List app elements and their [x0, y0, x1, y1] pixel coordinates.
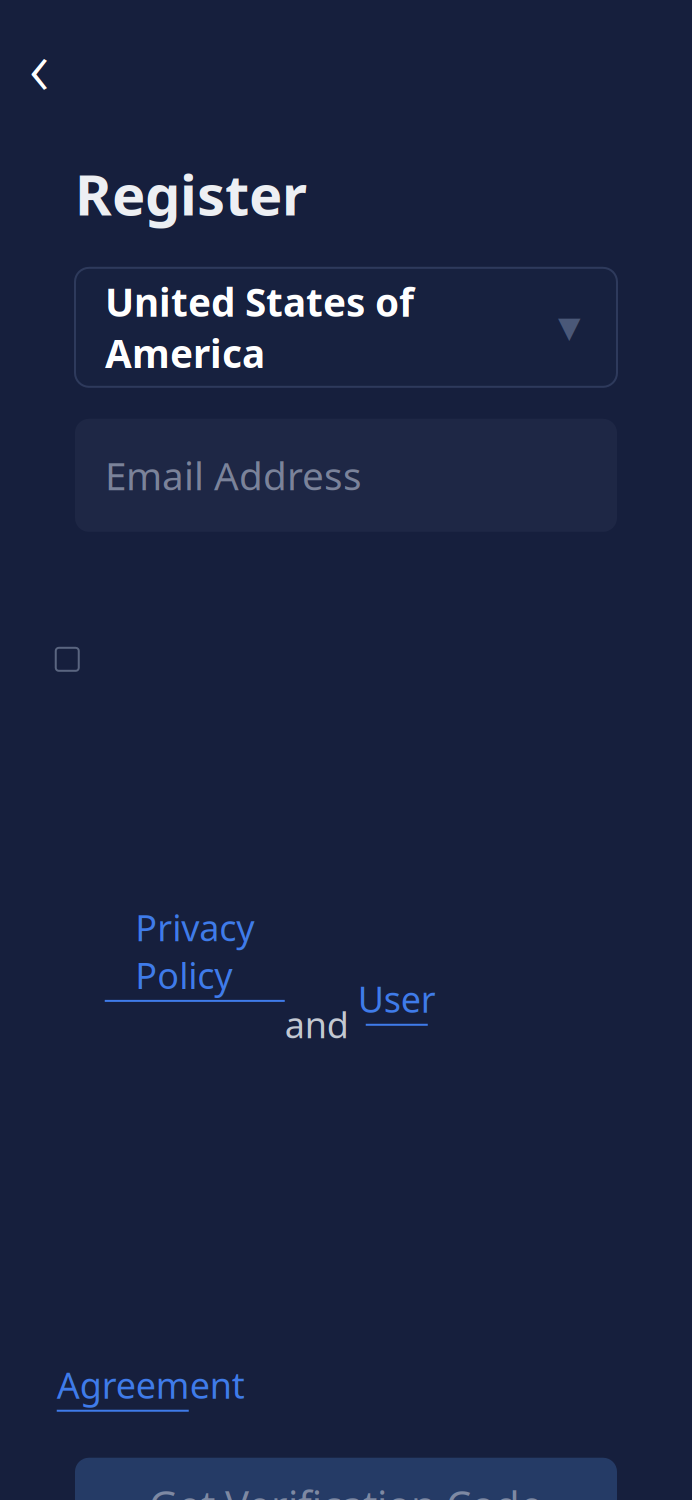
staticText: United States of America [105, 276, 414, 379]
staticText: ▼ [558, 311, 581, 344]
button[interactable]: Email Address [75, 419, 617, 532]
button[interactable]: I agree to the [86, 642, 606, 1412]
staticText: User [358, 975, 436, 1023]
button[interactable]: United States of America [75, 268, 617, 387]
button[interactable]: Back [8, 34, 70, 96]
staticText: Privacy Policy [135, 903, 254, 999]
button[interactable]: Get Verification Code [75, 1458, 617, 1500]
staticText: and [285, 953, 358, 1048]
staticText: Get Verification Code [149, 1478, 543, 1500]
staticText: Register [75, 156, 307, 231]
staticText: Email Address [105, 450, 362, 501]
staticText: Agreement [57, 1361, 245, 1409]
staticText: ‹ [29, 14, 49, 117]
